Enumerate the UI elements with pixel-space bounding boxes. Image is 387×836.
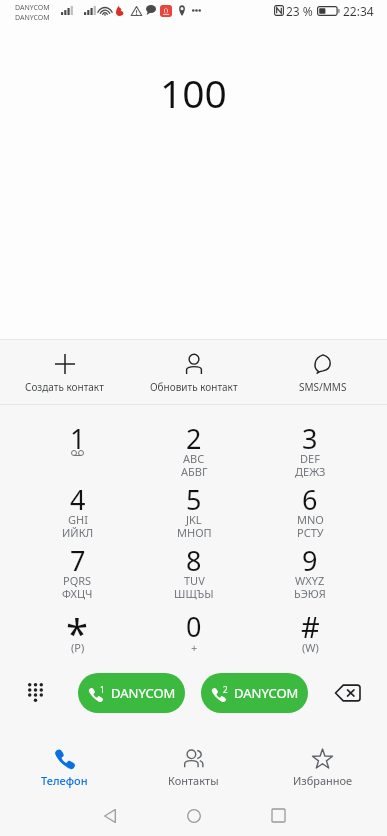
staticText: *: [66, 605, 89, 659]
button[interactable]: 7: [19, 527, 136, 588]
button[interactable]: Show dialpad: [0, 665, 70, 720]
staticText: 0: [186, 608, 202, 645]
staticText: ABC: [183, 451, 205, 466]
staticText: DEF: [300, 451, 320, 466]
button[interactable]: Home: [152, 795, 236, 836]
staticText: DANYCOM: [111, 684, 176, 702]
staticText: DANYCOM: [234, 684, 299, 702]
button[interactable]: Delete: [308, 665, 387, 720]
button[interactable]: SMS/MMS: [258, 340, 387, 404]
button[interactable]: 8: [136, 527, 252, 588]
staticText: +: [191, 640, 198, 655]
staticText: DANYCOM: [15, 13, 50, 23]
staticText: ФХЦЧ: [62, 586, 93, 601]
button[interactable]: 6: [252, 466, 368, 527]
staticText: 5: [186, 481, 202, 518]
button[interactable]: Телефон: [0, 720, 129, 795]
staticText: 3: [302, 420, 318, 457]
button[interactable]: Recent apps: [236, 795, 320, 836]
staticText: 100: [160, 66, 227, 119]
staticText: SMS/MMS: [299, 380, 347, 394]
staticText: Телефон: [41, 773, 88, 788]
staticText: JKL: [186, 512, 202, 527]
staticText: PQRS: [63, 573, 92, 588]
staticText: Избранное: [293, 773, 353, 788]
staticText: 4: [70, 481, 86, 518]
button[interactable]: 5: [136, 466, 252, 527]
staticText: 8: [186, 542, 202, 579]
button[interactable]: Избранное: [258, 720, 387, 795]
button[interactable]: 1: [19, 405, 136, 466]
staticText: #: [301, 607, 320, 646]
staticText: РСТУ: [297, 525, 324, 540]
staticText: Создать контакт: [25, 380, 104, 394]
button[interactable]: #: [252, 588, 368, 665]
staticText: 1: [70, 420, 86, 457]
staticText: 9: [302, 542, 318, 579]
staticText: АБВГ: [181, 464, 208, 479]
button[interactable]: 9: [252, 527, 368, 588]
staticText: МНОП: [177, 525, 212, 540]
button[interactable]: Контакты: [129, 720, 258, 795]
staticText: 7: [70, 542, 86, 579]
button[interactable]: 0: [136, 588, 252, 665]
staticText: ЬЭЮЯ: [294, 586, 326, 601]
staticText: 23 %: [286, 3, 313, 19]
staticText: TUV: [184, 573, 205, 588]
button[interactable]: 1: [78, 673, 185, 713]
staticText: 1: [100, 684, 105, 695]
staticText: (P): [71, 640, 85, 655]
staticText: 2: [186, 420, 202, 457]
staticText: 2: [223, 684, 228, 695]
staticText: ДЕЖЗ: [295, 464, 326, 479]
staticText: ШЩЪЫ: [174, 586, 214, 601]
staticText: GHI: [68, 512, 88, 527]
staticText: Контакты: [168, 773, 219, 788]
staticText: ИЙКЛ: [62, 525, 94, 540]
staticText: MNO: [297, 512, 324, 527]
button[interactable]: Создать контакт: [0, 340, 129, 404]
staticText: 22:34: [343, 3, 374, 19]
button[interactable]: Обновить контакт: [129, 340, 258, 404]
staticText: WXYZ: [295, 573, 325, 588]
button[interactable]: *: [19, 588, 136, 665]
button[interactable]: 2: [136, 405, 252, 466]
staticText: Обновить контакт: [150, 380, 238, 394]
button[interactable]: 2: [201, 673, 308, 713]
staticText: 6: [302, 481, 318, 518]
button[interactable]: 4: [19, 466, 136, 527]
button[interactable]: 3: [252, 405, 368, 466]
staticText: (W): [302, 640, 319, 655]
button[interactable]: Back: [68, 795, 152, 836]
staticText: DANYCOM: [15, 3, 50, 13]
